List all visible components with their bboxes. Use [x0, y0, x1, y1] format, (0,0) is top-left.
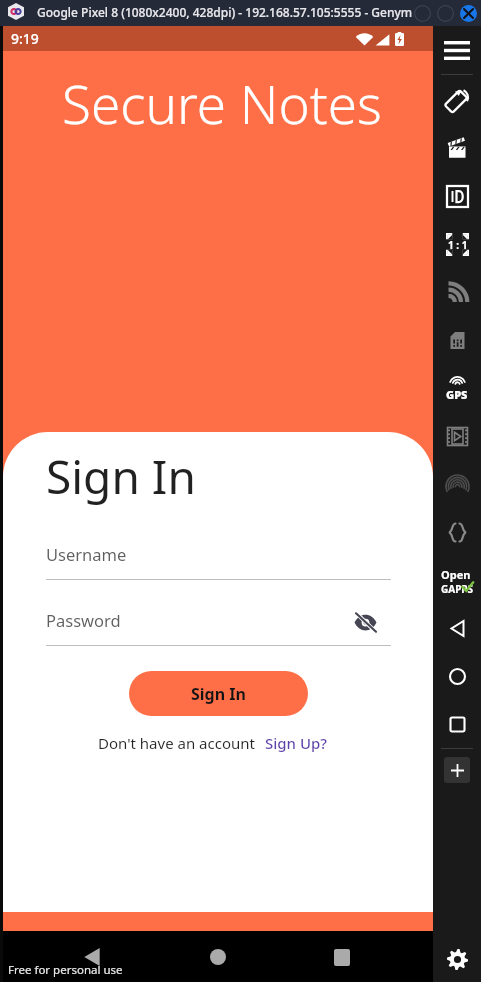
button[interactable]: Sign In — [129, 671, 308, 716]
button[interactable]: Toggle password visibility — [350, 607, 380, 637]
button[interactable]: GPS — [433, 364, 481, 412]
button[interactable]: Maximise — [436, 4, 454, 22]
staticText: Sign In — [191, 683, 246, 705]
button[interactable]: Open GApps — [433, 556, 481, 604]
button[interactable]: Identifiers — [433, 172, 481, 220]
staticText: 9:19 — [11, 29, 39, 48]
button[interactable]: Menu — [433, 26, 481, 74]
button[interactable]: Home — [433, 652, 481, 700]
staticText: Don't have an account — [98, 733, 255, 753]
staticText: Sign In — [46, 445, 196, 508]
staticText: GPS — [446, 387, 468, 402]
button[interactable]: Minimise — [413, 4, 431, 22]
button[interactable]: Fingerprint — [433, 460, 481, 508]
button[interactable]: Network — [433, 268, 481, 316]
staticText: Open — [441, 567, 471, 582]
button[interactable]: Scale 1 to 1 — [433, 220, 481, 268]
button[interactable]: Home — [181, 940, 254, 974]
staticText: Sign Up? — [265, 733, 327, 753]
button[interactable]: Rotate — [433, 76, 481, 124]
button[interactable]: Recents — [254, 940, 429, 974]
staticText: Secure Notes — [62, 67, 382, 139]
staticText: Password — [46, 609, 121, 631]
button[interactable]: Developer tools — [433, 508, 481, 556]
button[interactable]: Settings — [433, 937, 481, 982]
staticText: Google Pixel 8 (1080x2400, 428dpi) - 192… — [37, 4, 413, 20]
staticText: Username — [46, 543, 127, 565]
button[interactable]: Sign Up? — [265, 733, 327, 753]
button[interactable]: Record video — [433, 124, 481, 172]
staticText: 1 : 1 — [448, 238, 468, 252]
button[interactable]: Close — [460, 5, 477, 22]
staticText: Free for personal use — [8, 962, 123, 978]
button[interactable]: Baseband SIM — [433, 316, 481, 364]
button[interactable]: Back — [433, 604, 481, 652]
button[interactable]: Back — [3, 940, 181, 974]
button[interactable]: Recents — [433, 700, 481, 748]
button[interactable]: Camera — [433, 412, 481, 460]
button[interactable]: More widgets — [433, 749, 481, 790]
staticText: GAPPS — [441, 582, 474, 593]
